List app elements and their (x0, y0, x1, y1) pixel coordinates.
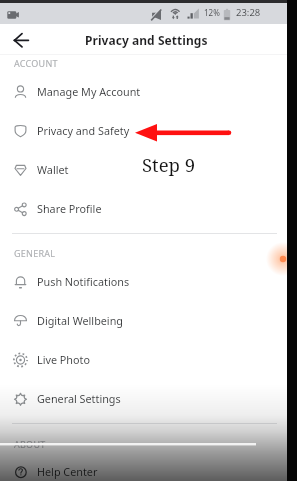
button[interactable]: Digital Wellbeing (0, 298, 297, 337)
staticText: 23:28 (236, 6, 261, 19)
staticText: Privacy and Settings (85, 32, 208, 48)
staticText: Step 9 (142, 152, 196, 177)
staticText: ACCOUNT (14, 57, 58, 69)
staticText: Live Photo (37, 352, 90, 367)
staticText: GENERAL (14, 247, 56, 259)
staticText: 12% (204, 7, 220, 18)
button[interactable]: General Settings (0, 376, 297, 415)
staticText: General Settings (37, 391, 121, 406)
button[interactable]: Live Photo (0, 337, 297, 376)
button[interactable]: Privacy and Safety (0, 108, 297, 147)
staticText: Privacy and Safety (37, 123, 130, 138)
staticText: Help Center (37, 464, 98, 479)
staticText: Push Notifications (37, 274, 130, 289)
button[interactable]: Share Profile (0, 186, 297, 225)
staticText: Manage My Account (37, 84, 141, 99)
button[interactable]: Push Notifications (0, 259, 297, 298)
staticText: Digital Wellbeing (37, 313, 123, 328)
button[interactable]: Manage My Account (0, 69, 297, 108)
staticText: Wallet (37, 162, 69, 177)
button[interactable]: Wallet (0, 147, 297, 186)
staticText: Share Profile (37, 201, 102, 216)
button[interactable]: Help Center (0, 449, 297, 481)
staticText: ABOUT (14, 438, 46, 450)
button[interactable]: Back (8, 27, 34, 53)
